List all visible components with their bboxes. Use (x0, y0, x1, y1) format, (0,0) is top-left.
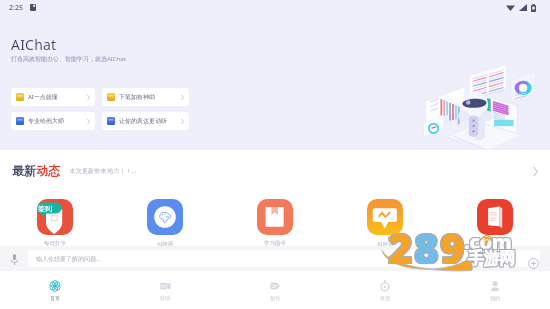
staticText: 9 (440, 219, 465, 263)
button[interactable]: 文档助手 (440, 199, 550, 246)
staticText: 9 (441, 218, 466, 262)
staticText: 2 (388, 220, 413, 264)
button[interactable]: Voice input (7, 252, 21, 266)
staticText: 2 (387, 218, 412, 262)
staticText: 手游网 (467, 248, 514, 268)
staticText: .com (465, 229, 513, 256)
staticText: 9 (440, 220, 465, 264)
button[interactable]: 发现 (330, 271, 440, 309)
staticText: 2 (387, 219, 412, 263)
staticText: 9 (439, 218, 464, 262)
staticText: .com (463, 229, 511, 256)
staticText: 8 (415, 218, 440, 262)
staticText: 下笔如有神助 (119, 93, 155, 101)
staticText: AI对话 (377, 240, 394, 246)
button[interactable]: AI一点就懂 (11, 88, 95, 106)
staticText: 签到 (38, 204, 52, 213)
button[interactable]: 让你的表达更动听 (102, 112, 189, 130)
staticText: 手游网 (469, 248, 516, 268)
staticText: .com (463, 227, 511, 254)
staticText: 2 (389, 220, 414, 264)
staticText: 2 (387, 220, 412, 264)
staticText: 2 (388, 218, 413, 262)
staticText: 手游网 (467, 250, 514, 270)
staticText: 让你的表达更动听 (119, 117, 167, 125)
staticText: .com (464, 228, 512, 255)
staticText: AIChat (11, 35, 57, 54)
staticText: 8 (413, 220, 438, 264)
staticText: 每日打卡 (44, 240, 66, 246)
staticText: 文档助手 (484, 240, 506, 246)
staticText: .com (464, 227, 512, 254)
staticText: 2 (389, 218, 414, 262)
staticText: 动态 (36, 163, 60, 178)
staticText: 手游网 (468, 249, 515, 269)
button[interactable]: 我的 (440, 271, 550, 309)
staticText: .com (463, 228, 511, 255)
staticText: 8 (415, 220, 440, 264)
staticText: 8 (413, 219, 438, 263)
staticText: 本次更新带来 给力！！… (70, 167, 137, 175)
button[interactable]: 下笔如有神助 (102, 88, 189, 106)
staticText: 8 (415, 219, 440, 263)
staticText: 创作 (270, 295, 280, 301)
staticText: 首页 (50, 295, 60, 301)
button[interactable]: 首页 (0, 271, 110, 309)
button[interactable]: 创作 (220, 271, 330, 309)
staticText: .com (465, 228, 513, 255)
staticText: 发现 (380, 295, 390, 301)
staticText: 8 (414, 219, 439, 263)
staticText: 8 (413, 218, 438, 262)
staticText: 打造高效智能办公、智能学习，就选AIChat (11, 55, 126, 63)
button[interactable]: 签到 (0, 199, 110, 246)
button[interactable]: More (528, 164, 542, 178)
staticText: 9 (441, 220, 466, 264)
staticText: 2 (389, 219, 414, 263)
button[interactable]: AI对话 (330, 199, 440, 246)
button[interactable]: AI绘画 (110, 199, 220, 246)
staticText: 手游网 (468, 250, 515, 270)
staticText: 我的 (490, 295, 500, 301)
button[interactable]: 对话 (110, 271, 220, 309)
staticText: 9 (439, 219, 464, 263)
staticText: AI绘画 (157, 240, 174, 246)
staticText: 9 (441, 219, 466, 263)
staticText: 输入你想要了解的问题... (36, 255, 101, 263)
staticText: 手游网 (469, 249, 516, 269)
button[interactable]: 输入你想要了解的问题... (28, 250, 540, 267)
staticText: 手游网 (468, 248, 515, 268)
button[interactable]: 学习助手 (220, 199, 330, 246)
staticText: 手游网 (467, 249, 514, 269)
staticText: .com (464, 229, 512, 256)
staticText: 专业绘画大师 (28, 117, 64, 125)
staticText: 8 (414, 220, 439, 264)
staticText: 学习助手 (264, 240, 286, 246)
staticText: 对话 (160, 295, 170, 301)
staticText: 9 (440, 218, 465, 262)
staticText: 2 (388, 219, 413, 263)
staticText: AI一点就懂 (28, 93, 58, 101)
button[interactable]: 专业绘画大师 (11, 112, 95, 130)
staticText: 最新 (12, 163, 36, 178)
staticText: 9 (439, 220, 464, 264)
staticText: 手游网 (469, 250, 516, 270)
staticText: .com (465, 227, 513, 254)
staticText: 2:25 (9, 3, 23, 13)
staticText: 8 (414, 218, 439, 262)
